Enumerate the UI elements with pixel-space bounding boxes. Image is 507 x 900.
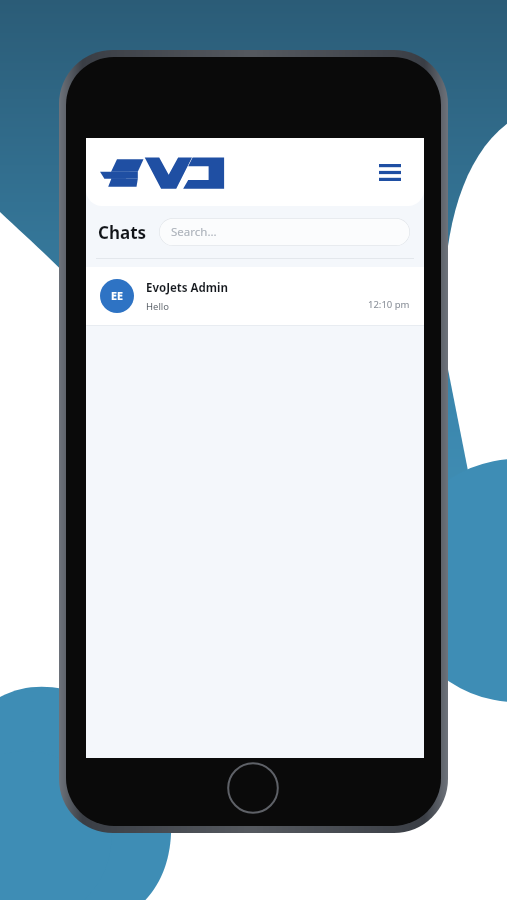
staticText: Search... (171, 224, 217, 240)
button[interactable]: EE (86, 267, 424, 325)
staticText: 12:10 pm (368, 298, 410, 311)
button[interactable]: Menu (368, 150, 412, 194)
staticText: EE (111, 289, 123, 303)
staticText: EvoJets Admin (146, 280, 228, 296)
button[interactable]: EVO home (100, 151, 226, 195)
staticText: Hello (146, 300, 170, 313)
button[interactable]: Search... (159, 218, 410, 246)
staticText: Chats (98, 221, 147, 244)
